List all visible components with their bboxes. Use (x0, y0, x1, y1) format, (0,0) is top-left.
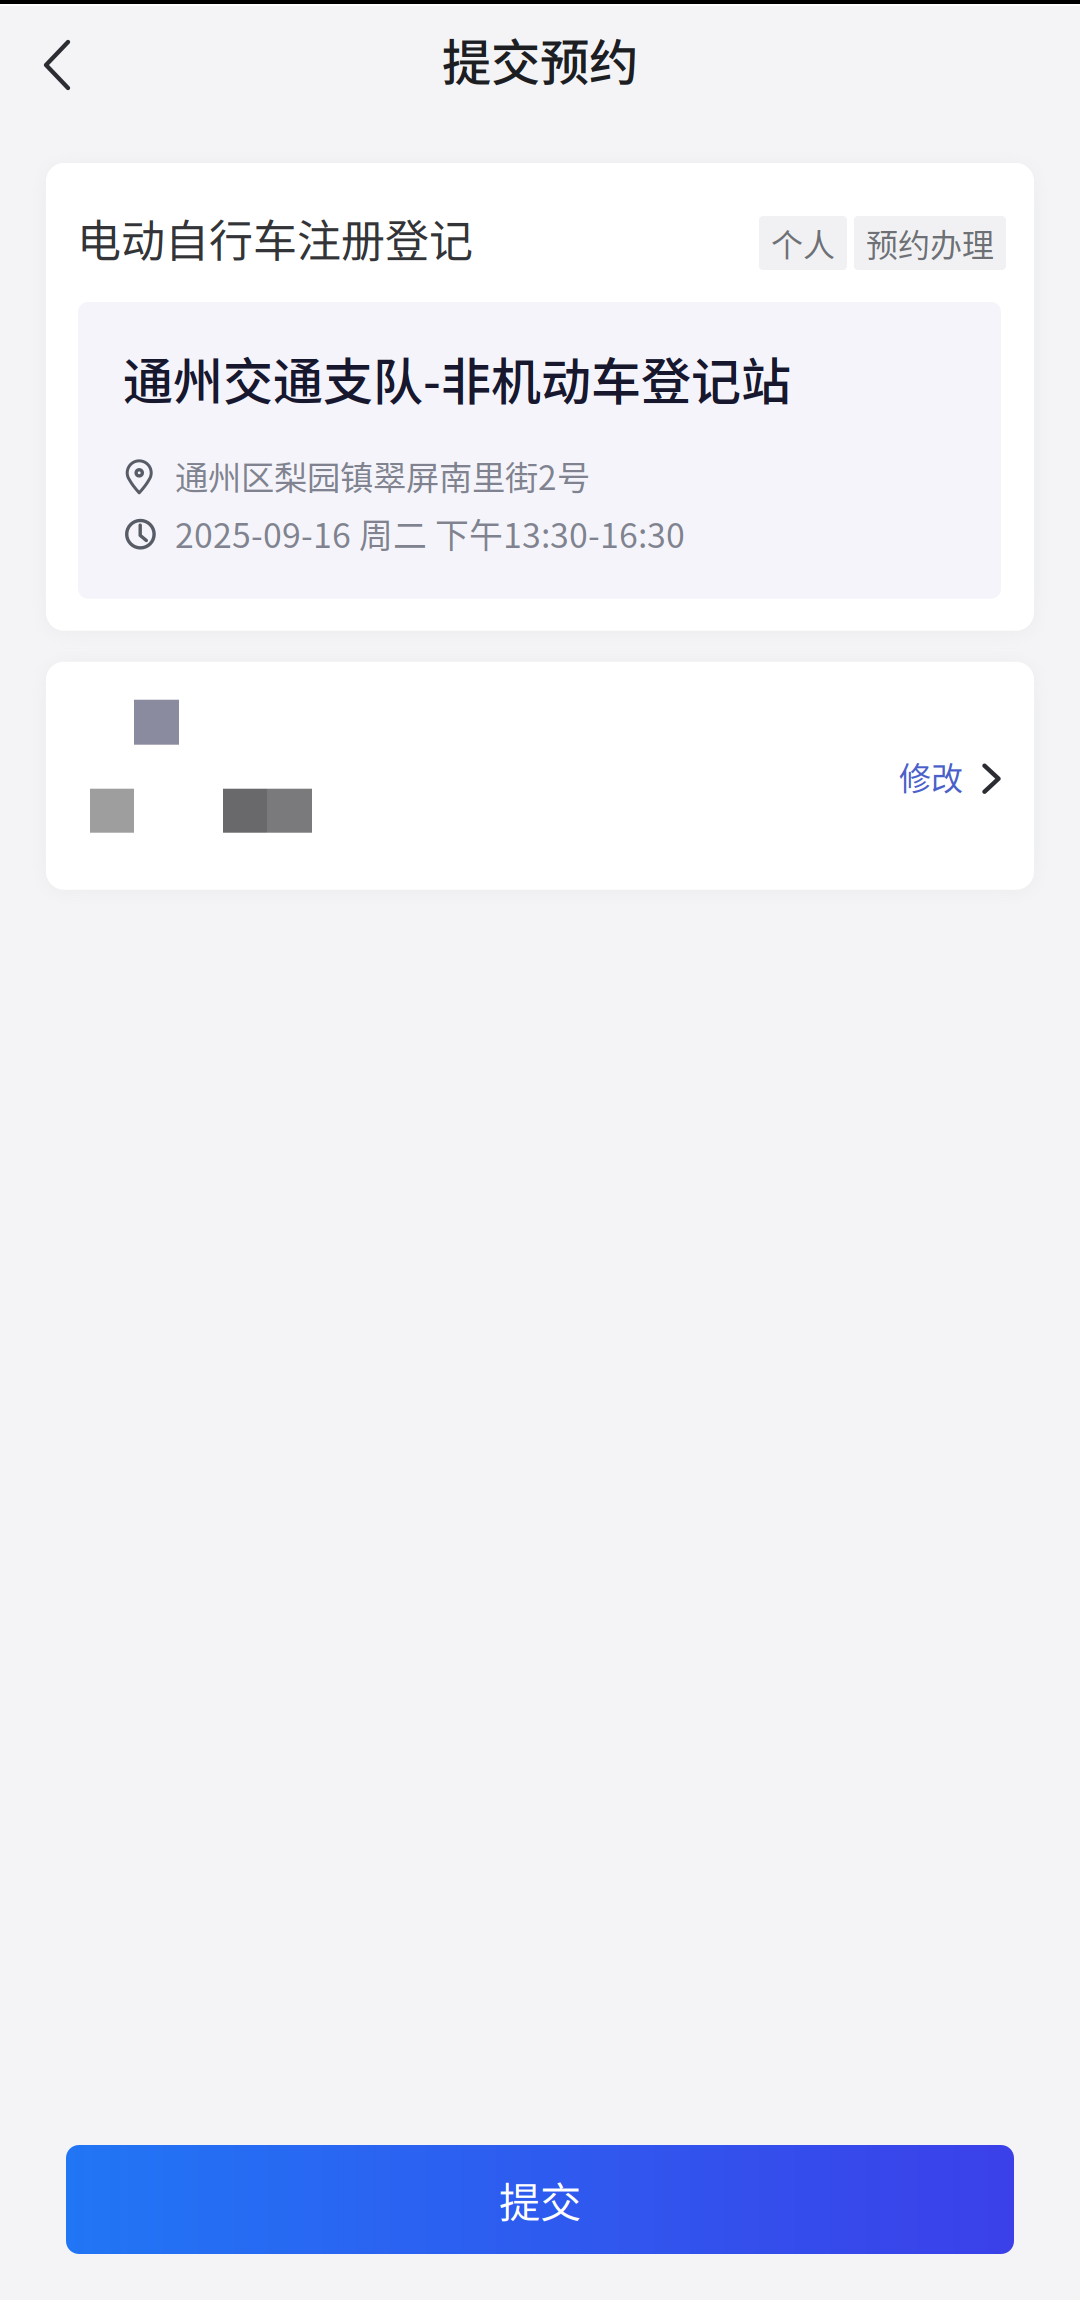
button[interactable]: 返回 (20, 20, 94, 118)
button[interactable]: 修改 (46, 662, 1034, 890)
staticText: 修改 (899, 753, 963, 799)
staticText: 通州交通支队-非机动车登记站 (123, 342, 791, 414)
staticText: 电动自行车注册登记 (77, 206, 473, 270)
button[interactable]: 提交 (66, 2145, 1014, 2254)
staticText: 2025-09-16 周二 下午13:30-16:30 (175, 509, 685, 558)
staticText: 通州区梨园镇翠屏南里街2号 (175, 451, 590, 500)
staticText: 提交预约 (442, 23, 638, 95)
staticText: 预约办理 (866, 220, 994, 266)
staticText: 个人 (771, 220, 835, 266)
staticText: 提交 (499, 2170, 581, 2229)
